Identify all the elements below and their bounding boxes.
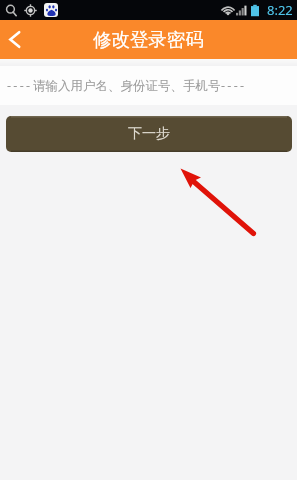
staticText: ---- [7, 77, 33, 94]
staticText: ---- [221, 77, 247, 94]
staticText: 下一步 [128, 125, 170, 143]
button[interactable]: ---- [0, 66, 297, 105]
button[interactable]: Back [0, 20, 297, 59]
button[interactable]: 下一步 [6, 116, 292, 152]
staticText: 修改登录密码 [93, 28, 204, 51]
staticText: 请输入用户名、身份证号、手机号 [33, 78, 221, 94]
staticText: 8:22 [267, 1, 293, 19]
